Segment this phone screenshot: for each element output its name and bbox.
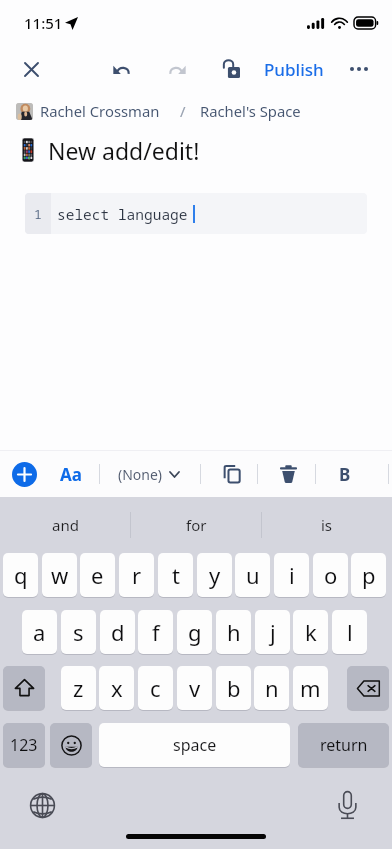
button[interactable]: Delete [268,451,308,497]
button[interactable]: return [298,723,389,767]
staticText: 11:51 [24,13,63,33]
button[interactable]: Emoji [50,723,92,767]
button[interactable]: Insert [5,451,44,497]
button[interactable]: t [158,553,193,597]
button[interactable]: e [80,553,115,597]
button[interactable]: u [235,553,270,597]
button[interactable]: j [255,610,290,654]
staticText: a [33,617,46,647]
button[interactable]: o [313,553,348,597]
staticText: g [188,617,202,647]
button[interactable]: is [262,500,392,550]
staticText: w [51,560,69,590]
button[interactable]: s [61,610,96,654]
staticText: q [14,560,28,590]
button[interactable]: 123 [3,723,45,767]
button[interactable]: i [274,553,309,597]
button[interactable]: v [177,666,212,710]
button[interactable]: Publish [258,45,330,93]
staticText: Rachel Crossman [40,101,160,121]
button[interactable]: l [332,610,367,654]
staticText: u [246,560,260,590]
button[interactable]: k [293,610,328,654]
staticText: 1 [34,205,42,223]
button[interactable]: z [61,666,96,710]
button[interactable]: Permissions [211,45,251,93]
staticText: B [339,463,351,486]
staticText: is [321,515,333,535]
button[interactable]: g [177,610,212,654]
staticText: space [173,734,217,756]
button[interactable]: b [216,666,251,710]
button[interactable]: Redo [156,45,198,93]
staticText: y [209,560,221,590]
button[interactable]: a [22,610,57,654]
staticText: l [347,617,353,647]
staticText: j [270,617,276,647]
button[interactable]: Change keyboard [25,788,60,823]
button[interactable]: Backspace [347,666,389,710]
staticText: p [362,560,376,590]
staticText: z [73,673,84,703]
button[interactable]: Copy [212,451,252,497]
staticText: return [320,734,368,756]
staticText: o [324,560,338,590]
button[interactable]: h [216,610,251,654]
staticText: i [289,560,295,590]
staticText: m [300,673,321,703]
staticText: select language [57,204,188,224]
button[interactable]: p [351,553,386,597]
button[interactable]: r [119,553,154,597]
button[interactable]: for [131,500,261,550]
staticText: New add/edit! [48,135,200,166]
button[interactable]: d [100,610,135,654]
staticText: Aa [60,463,82,486]
staticText: b [227,673,241,703]
staticText: Publish [264,58,324,81]
button[interactable]: Profile photo [16,103,33,120]
button[interactable]: q [3,553,38,597]
staticText: r [132,560,142,590]
button[interactable]: (None) [110,451,187,497]
staticText: for [186,515,207,535]
staticText: s [73,617,84,647]
button[interactable]: c [138,666,173,710]
button[interactable]: n [254,666,289,710]
staticText: x [111,673,123,703]
button[interactable]: Aa [52,451,90,497]
staticText: k [305,617,317,647]
staticText: c [150,673,161,703]
staticText: (None) [118,465,163,484]
button[interactable]: m [293,666,328,710]
staticText: e [91,560,104,590]
button[interactable]: w [42,553,77,597]
staticText: Rachel's Space [200,101,301,121]
button[interactable]: Dictate [330,788,365,823]
staticText: f [152,617,160,647]
button[interactable]: space [99,723,290,767]
staticText: n [265,673,279,703]
staticText: and [52,515,79,535]
button[interactable]: B [326,451,364,497]
button[interactable]: f [138,610,173,654]
button[interactable]: More options [336,45,382,93]
button[interactable]: x [99,666,134,710]
staticText: 123 [10,734,38,756]
button[interactable]: Rachel Crossman [40,101,160,121]
button[interactable]: y [197,553,232,597]
staticText: / [180,101,186,121]
button[interactable]: Shift [3,666,45,710]
button[interactable]: Close [11,45,52,93]
staticText: t [172,560,180,590]
staticText: v [189,673,201,703]
staticText: d [111,617,125,647]
staticText: h [227,617,241,647]
button[interactable]: and [0,500,130,550]
button[interactable]: Undo [100,45,142,93]
button[interactable]: Rachel's Space [200,101,301,121]
